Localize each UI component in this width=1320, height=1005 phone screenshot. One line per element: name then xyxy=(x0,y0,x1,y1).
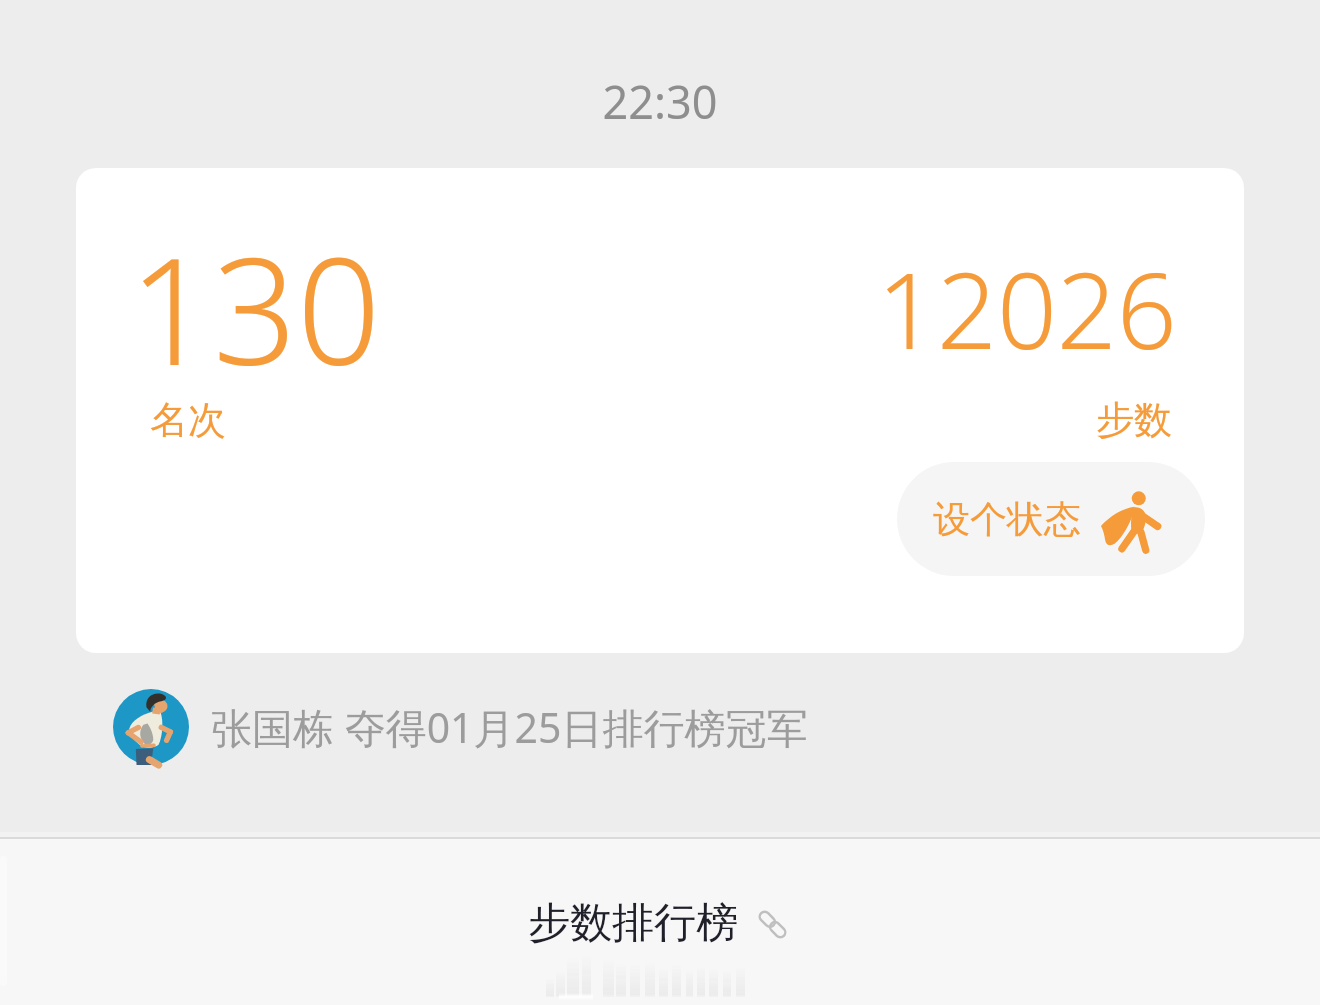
button[interactable]: Copy link xyxy=(758,910,787,939)
button[interactable]: 步数排行榜 xyxy=(528,897,787,950)
staticText: 12026 xyxy=(877,237,1177,380)
button[interactable]: 张国栋 夺得01月25日排行榜冠军 xyxy=(113,689,808,765)
button[interactable]: 设个状态 xyxy=(897,462,1205,576)
staticText: 130 xyxy=(129,208,381,408)
staticText: 步数排行榜 xyxy=(528,897,738,950)
staticText: 设个状态 xyxy=(933,496,1081,543)
staticText: 张国栋 夺得01月25日排行榜冠军 xyxy=(211,699,808,755)
staticText: 22:30 xyxy=(0,71,1320,132)
staticText: 步数 xyxy=(1096,396,1172,444)
button[interactable]: 130 xyxy=(76,168,1244,653)
staticText: 名次 xyxy=(150,396,226,444)
